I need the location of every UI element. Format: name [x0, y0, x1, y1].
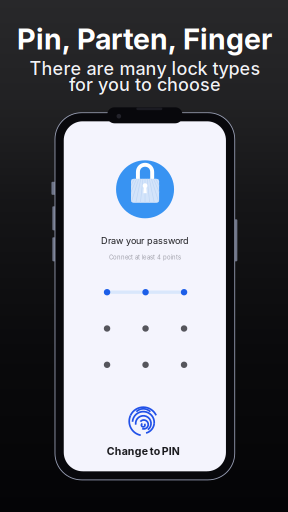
staticText: for you to choose	[69, 74, 221, 95]
staticText: Change to PIN	[107, 445, 180, 457]
staticText: Pin, Parten, Finger	[17, 21, 272, 57]
staticText: Connect at least 4 points	[109, 254, 181, 261]
staticText: Draw your password	[101, 235, 189, 246]
button[interactable]: Change to PIN	[93, 398, 194, 462]
staticText: There are many lock types	[29, 58, 260, 79]
